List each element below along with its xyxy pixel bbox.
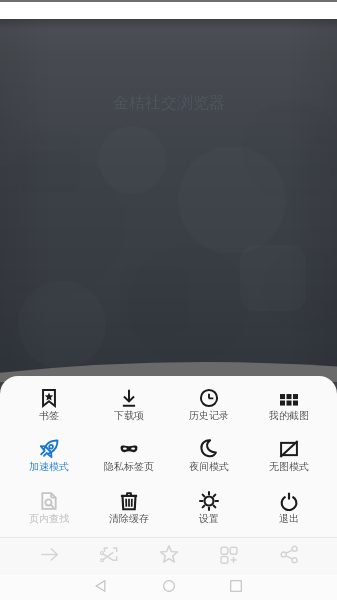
staticText: 金桔社交浏览器 (113, 93, 225, 113)
staticText: 清除缓存 (109, 512, 149, 525)
staticText: 设置 (199, 512, 219, 525)
button[interactable]: 下载项 (89, 389, 169, 422)
button[interactable]: 设置 (169, 492, 249, 525)
button[interactable]: Back (81, 575, 121, 596)
staticText: 书签 (39, 409, 59, 422)
button[interactable]: Share (259, 538, 319, 570)
staticText: 页内查找 (29, 512, 69, 525)
button[interactable]: 我的截图 (249, 389, 329, 422)
button[interactable]: 历史记录 (169, 389, 249, 422)
staticText: 隐私标签页 (104, 460, 154, 473)
button[interactable]: 清除缓存 (89, 492, 169, 525)
button[interactable]: 退出 (249, 492, 329, 525)
staticText: 下载项 (114, 409, 144, 422)
staticText: 加速模式 (29, 460, 69, 473)
button[interactable]: 书签 (8, 389, 89, 422)
button[interactable]: Screenshot (79, 538, 139, 570)
staticText: 夜间模式 (189, 460, 229, 473)
staticText: 无图模式 (269, 460, 309, 473)
button[interactable]: Forward (19, 538, 79, 570)
button[interactable]: 隐私标签页 (89, 440, 169, 473)
button[interactable]: Add bookmark (139, 538, 199, 570)
button[interactable]: 加速模式 (8, 440, 89, 473)
staticText: 退出 (279, 512, 299, 525)
button[interactable]: 页内查找 (8, 492, 89, 525)
button[interactable]: Home (149, 575, 189, 596)
button[interactable]: 无图模式 (249, 440, 329, 473)
button[interactable]: Tabs (199, 538, 259, 570)
staticText: 历史记录 (189, 409, 229, 422)
button[interactable]: Recents (216, 575, 256, 596)
staticText: 我的截图 (269, 409, 309, 422)
button[interactable]: 夜间模式 (169, 440, 249, 473)
